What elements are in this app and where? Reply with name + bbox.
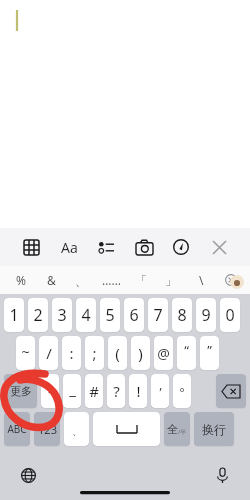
button[interactable]: 换行: [194, 412, 234, 446]
staticText: °: [179, 384, 185, 400]
staticText: (: [115, 343, 120, 363]
staticText: 9: [201, 304, 211, 326]
staticText: 、: [75, 273, 87, 288]
staticText: ABC: [7, 422, 27, 436]
staticText: ;: [92, 343, 97, 363]
button[interactable]: ?: [107, 374, 125, 408]
staticText: ”: [207, 341, 212, 359]
staticText: 3: [57, 304, 67, 326]
staticText: 8: [177, 304, 187, 326]
button[interactable]: /: [39, 336, 58, 370]
button[interactable]: Camera: [131, 234, 157, 260]
button[interactable]: 、: [64, 412, 89, 446]
staticText: /半: [178, 428, 187, 436]
button[interactable]: #: [85, 374, 103, 408]
button[interactable]: 123: [34, 412, 60, 446]
staticText: #: [89, 381, 99, 401]
button[interactable]: List: [93, 234, 119, 260]
button[interactable]: Table: [18, 234, 44, 260]
staticText: &: [47, 272, 56, 288]
staticText: 7: [153, 304, 163, 326]
button[interactable]: °: [173, 374, 191, 408]
button[interactable]: _: [63, 374, 81, 408]
staticText: 5: [105, 304, 115, 326]
button[interactable]: Clear: [216, 266, 246, 294]
staticText: 0: [225, 304, 235, 326]
button[interactable]: 更多: [4, 374, 37, 408]
button[interactable]: ”: [200, 336, 219, 370]
button[interactable]: Change keyboard: [16, 463, 40, 487]
staticText: Aa: [61, 238, 78, 257]
button[interactable]: 3: [52, 298, 72, 332]
button[interactable]: Close: [206, 234, 232, 260]
button[interactable]: 4: [76, 298, 96, 332]
button[interactable]: [93, 412, 160, 446]
button[interactable]: ’: [151, 374, 169, 408]
staticText: -: [48, 381, 53, 401]
staticText: 123: [38, 422, 57, 437]
staticText: 1: [9, 304, 19, 326]
staticText: %: [16, 272, 26, 288]
button[interactable]: Draw: [168, 234, 194, 260]
staticText: 全: [167, 422, 178, 436]
button[interactable]: 5: [100, 298, 120, 332]
staticText: 2: [33, 304, 43, 326]
staticText: 、: [72, 425, 82, 438]
staticText: /: [46, 343, 52, 363]
staticText: ?: [113, 381, 120, 401]
staticText: ……: [102, 272, 121, 288]
button[interactable]: 1: [4, 298, 24, 332]
button[interactable]: 6: [124, 298, 144, 332]
button[interactable]: !: [129, 374, 147, 408]
button[interactable]: 7: [148, 298, 168, 332]
staticText: _: [69, 379, 76, 399]
button[interactable]: :: [62, 336, 81, 370]
button[interactable]: ~: [16, 336, 35, 370]
button[interactable]: %: [6, 266, 36, 294]
button[interactable]: 2: [28, 298, 48, 332]
button[interactable]: Voice input: [210, 463, 234, 487]
button[interactable]: [216, 374, 246, 408]
button[interactable]: ): [131, 336, 150, 370]
button[interactable]: 、: [66, 266, 96, 294]
button[interactable]: 「: [126, 266, 156, 294]
button[interactable]: 9: [196, 298, 216, 332]
button[interactable]: 0: [220, 298, 240, 332]
button[interactable]: 8: [172, 298, 192, 332]
button[interactable]: (: [108, 336, 127, 370]
staticText: @: [157, 344, 170, 363]
staticText: :: [69, 343, 74, 363]
button[interactable]: 全: [164, 412, 190, 446]
button[interactable]: 」: [156, 266, 186, 294]
staticText: 4: [81, 304, 91, 326]
staticText: “: [184, 341, 189, 359]
button[interactable]: -: [41, 374, 59, 408]
staticText: 「: [135, 273, 147, 288]
button[interactable]: \: [186, 266, 216, 294]
button[interactable]: @: [154, 336, 173, 370]
button[interactable]: ;: [85, 336, 104, 370]
staticText: 换行: [202, 422, 226, 437]
staticText: ~: [21, 341, 30, 361]
button[interactable]: “: [177, 336, 196, 370]
staticText: \: [199, 272, 204, 288]
staticText: 6: [129, 304, 139, 326]
staticText: 更多: [10, 384, 32, 398]
button[interactable]: ABC: [4, 412, 30, 446]
button[interactable]: Aa: [56, 234, 82, 260]
staticText: 」: [165, 273, 177, 288]
staticText: ’: [159, 384, 162, 400]
button[interactable]: ……: [96, 266, 126, 294]
staticText: ): [138, 343, 143, 363]
staticText: !: [136, 381, 141, 401]
button[interactable]: &: [36, 266, 66, 294]
